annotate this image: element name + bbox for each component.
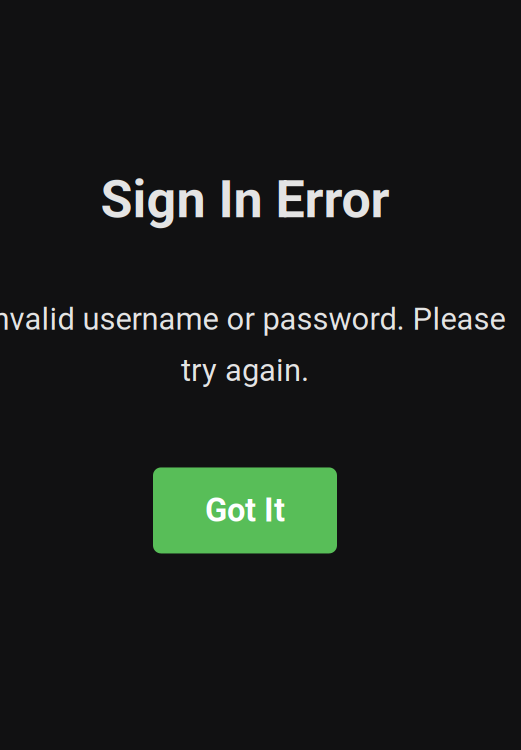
staticText: Invalid username or password. Please [0, 301, 505, 337]
staticText: Got It [205, 491, 285, 530]
button[interactable]: Got It [153, 467, 337, 553]
staticText: Sign In Error [100, 169, 389, 230]
staticText: try again. [181, 352, 309, 388]
